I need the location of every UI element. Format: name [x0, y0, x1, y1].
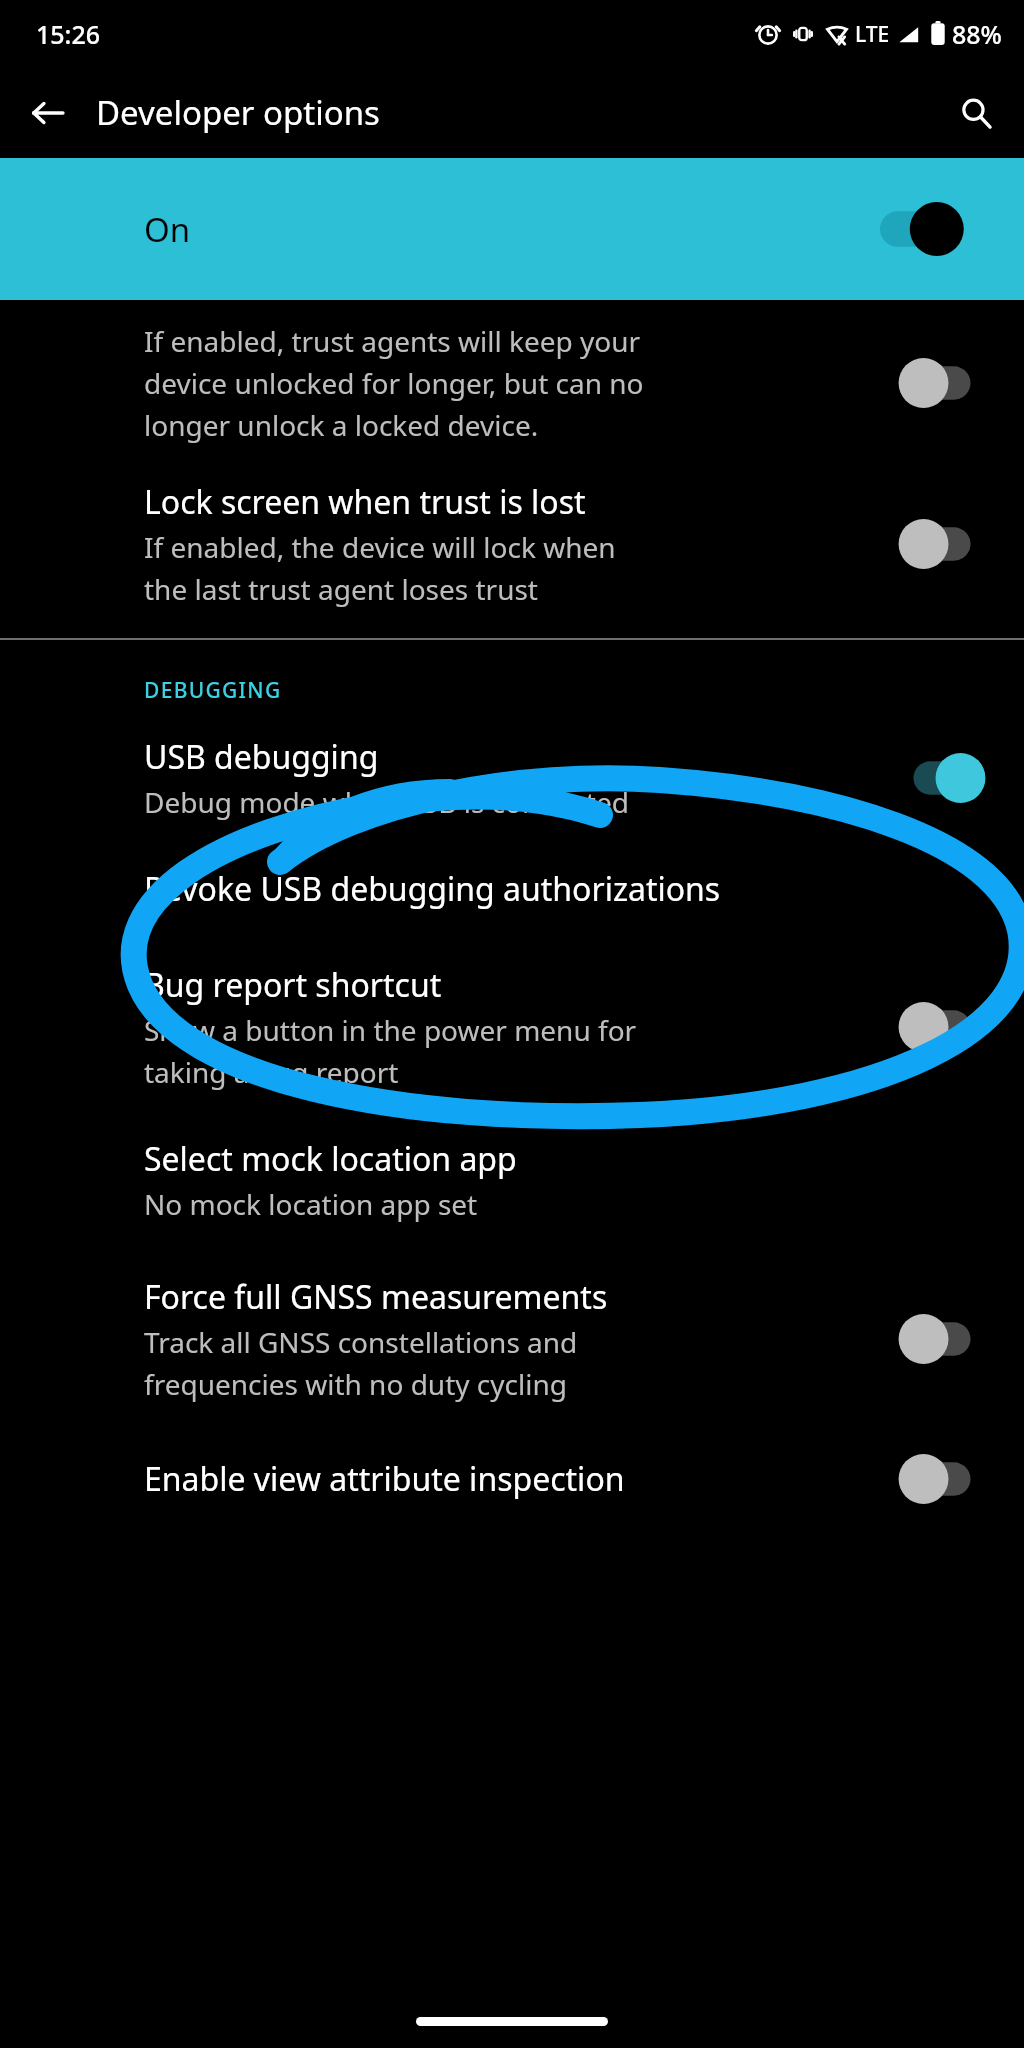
staticText: LTE [855, 20, 890, 49]
staticText: On [144, 207, 880, 252]
staticText: Lock screen when trust is lost [144, 480, 586, 524]
button[interactable]: Bug report shortcut [0, 947, 1024, 1119]
staticText: Bug report shortcut [144, 963, 442, 1007]
button[interactable]: Select mock location app [0, 1119, 1024, 1259]
staticText: Force full GNSS measurements [144, 1275, 608, 1319]
button[interactable]: On [0, 158, 1024, 300]
staticText: If enabled, the device will lock when th… [144, 528, 616, 608]
staticText: USB debugging [144, 735, 379, 779]
staticText: DEBUGGING [144, 676, 282, 705]
button[interactable]: Enable view attribute inspection [0, 1431, 1024, 1529]
staticText: 15:26 [36, 17, 101, 51]
button[interactable]: Force full GNSS measurements [0, 1259, 1024, 1431]
button[interactable]: If enabled, trust agents will keep your … [0, 308, 1024, 464]
button[interactable]: Back [20, 85, 76, 141]
staticText: No mock location app set [144, 1185, 478, 1223]
staticText: Developer options [96, 90, 380, 135]
staticText: Track all GNSS constellations and freque… [144, 1323, 578, 1403]
staticText: Show a button in the power menu for taki… [144, 1011, 637, 1091]
button[interactable]: USB debugging [0, 735, 1024, 847]
staticText: 88% [952, 17, 1002, 51]
button[interactable]: Lock screen when trust is lost [0, 464, 1024, 638]
staticText: Enable view attribute inspection [144, 1457, 625, 1501]
staticText: Select mock location app [144, 1137, 517, 1181]
staticText: Revoke USB debugging authorizations [144, 867, 721, 911]
button[interactable]: Revoke USB debugging authorizations [0, 847, 1024, 947]
staticText: If enabled, trust agents will keep your … [144, 322, 644, 444]
staticText: Debug mode when USB is connected [144, 783, 629, 821]
button[interactable]: Search [948, 85, 1004, 141]
